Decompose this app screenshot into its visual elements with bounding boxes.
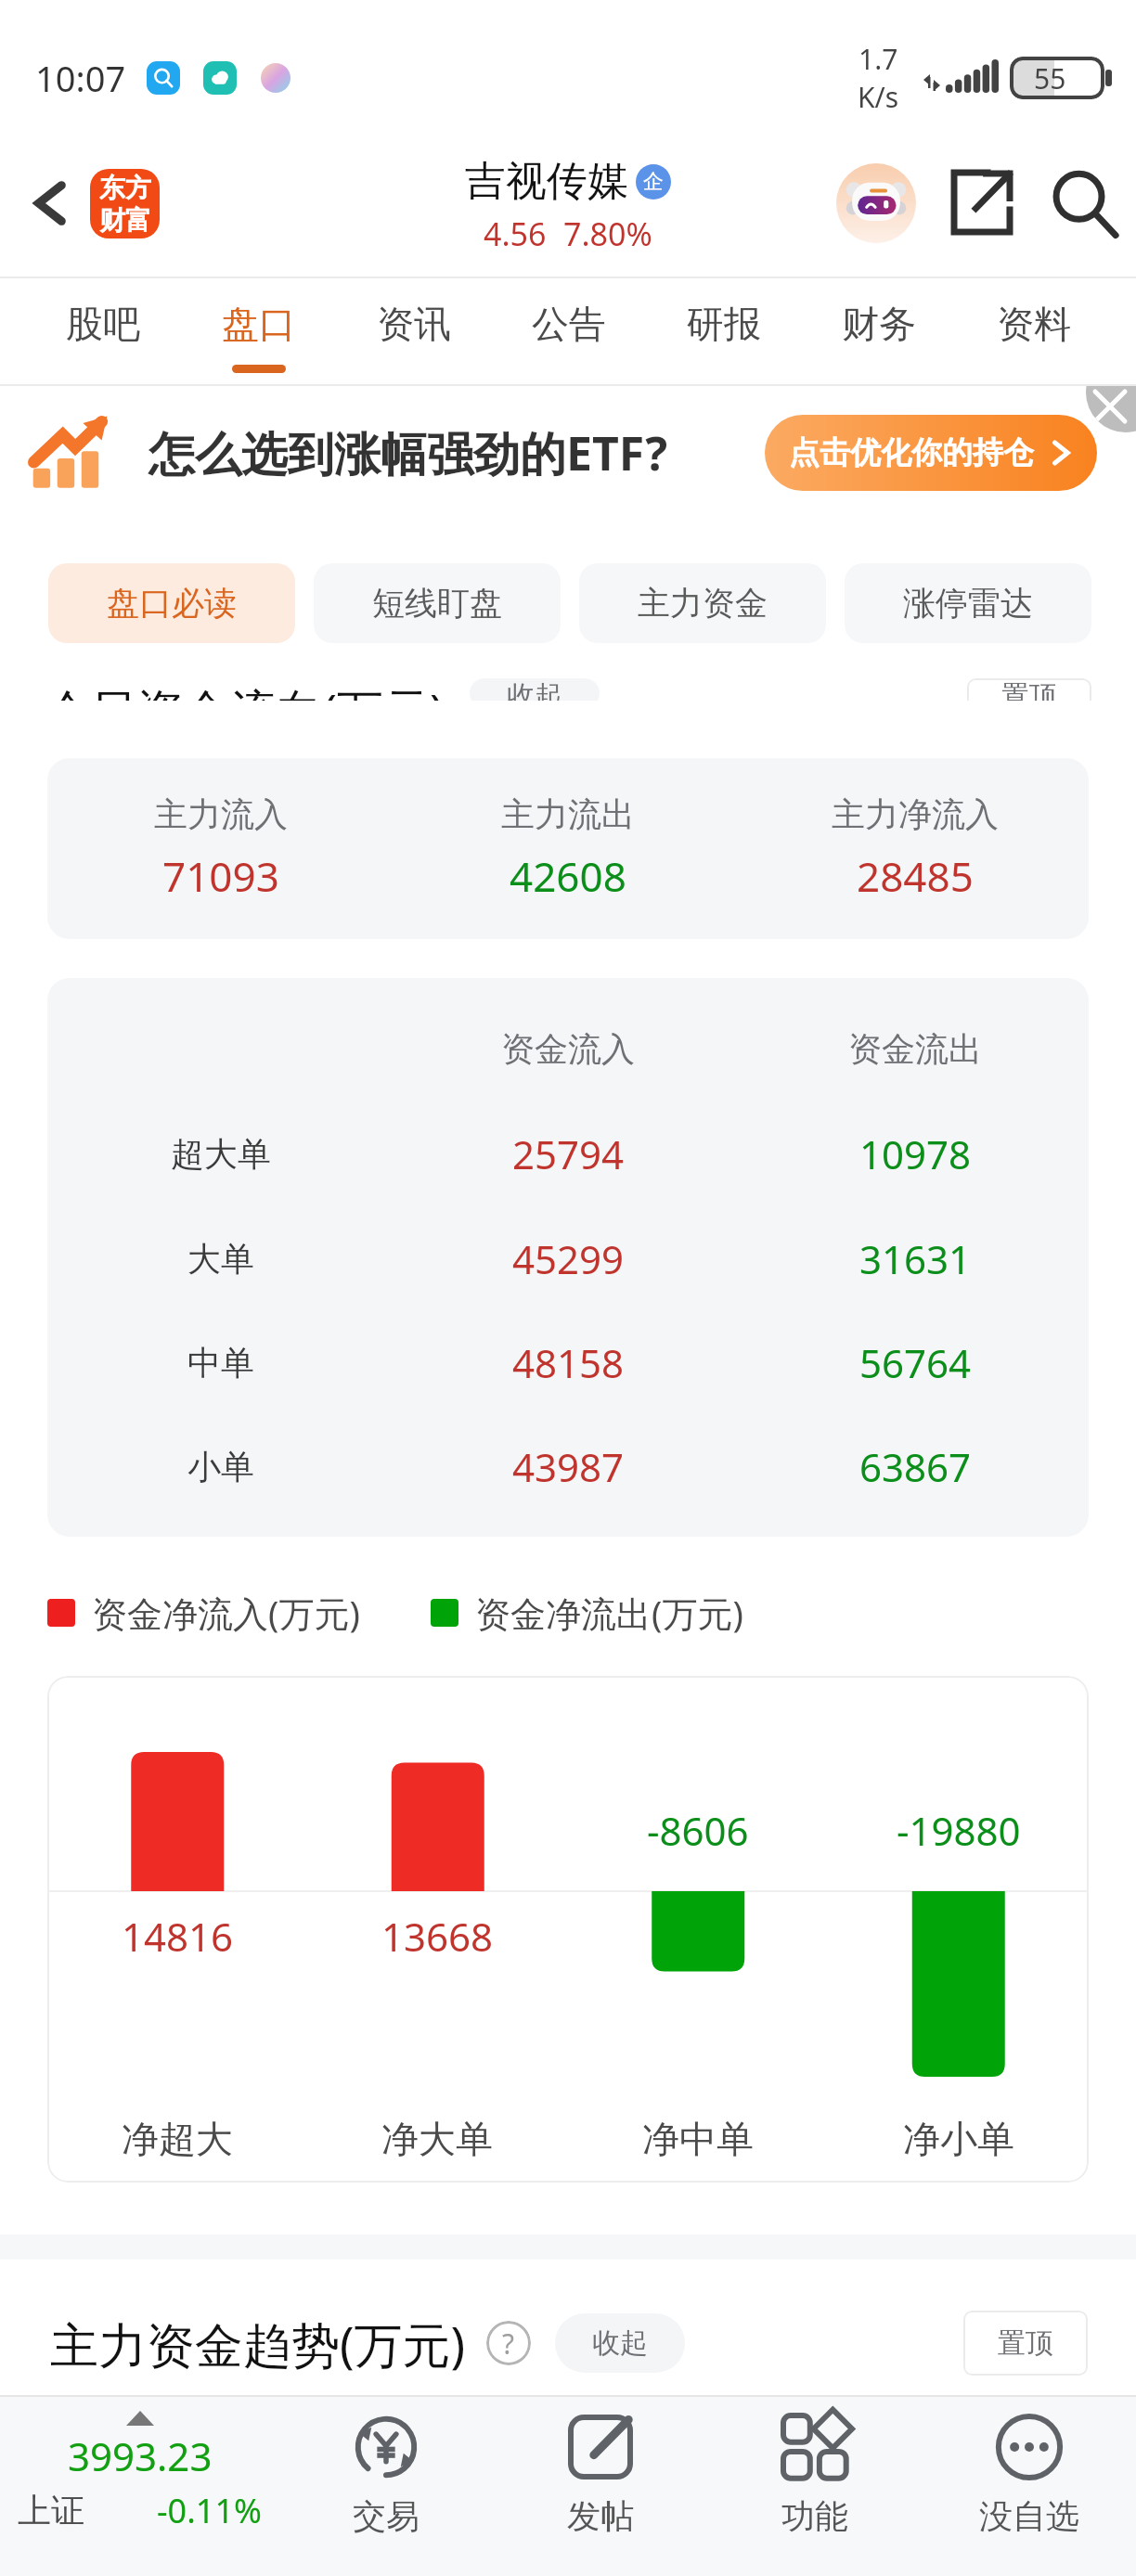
staticText: 1.7 (858, 40, 898, 78)
staticText: 大单 (187, 1238, 254, 1280)
button[interactable]: 发帖 (493, 2397, 707, 2576)
staticText: 没自选 (979, 2495, 1079, 2537)
staticText: 研报 (687, 301, 761, 347)
staticText: 上证 (18, 2490, 84, 2531)
staticText: 净大单 (381, 2116, 493, 2162)
staticText: 56764 (859, 1336, 972, 1389)
button[interactable]: 短线盯盘 (314, 563, 561, 643)
staticText: 净中单 (642, 2116, 754, 2162)
staticText: 收起 (507, 678, 562, 701)
button[interactable]: 收起 (555, 2313, 685, 2373)
staticText: 吉视传媒 (465, 156, 628, 207)
button[interactable]: 置顶 (963, 2311, 1088, 2376)
staticText: 14816 (122, 1910, 234, 1963)
staticText: 主力资金 (638, 583, 768, 624)
staticText: 公告 (532, 301, 606, 347)
staticText: -8606 (647, 1804, 749, 1857)
staticText: 42608 (510, 848, 626, 904)
staticText: 净超大 (122, 2116, 233, 2162)
button[interactable]: AI assistant (833, 161, 919, 246)
staticText: 企 (643, 169, 664, 195)
staticText: 发帖 (567, 2495, 634, 2537)
staticText: 超大单 (171, 1133, 271, 1175)
staticText: 55 (1034, 59, 1066, 97)
staticText: K/s (858, 78, 899, 116)
staticText: 资料 (997, 301, 1071, 347)
staticText: 置顶 (1001, 678, 1057, 701)
staticText: 东方 (99, 172, 151, 204)
staticText: 资金净流出(万元) (475, 1589, 743, 1637)
button[interactable]: 财务 (801, 278, 956, 384)
button[interactable]: Back (15, 168, 85, 238)
staticText: 财富 (99, 204, 151, 237)
staticText: 63867 (859, 1440, 972, 1493)
staticText: 资金净流入(万元) (92, 1589, 360, 1637)
staticText: -19880 (897, 1804, 1021, 1857)
staticText: 怎么选到涨幅强劲的ETF? (148, 421, 668, 484)
staticText: 资金流出 (848, 1028, 982, 1070)
staticText: 置顶 (998, 2325, 1053, 2361)
staticText: 4.56 (484, 213, 547, 255)
staticText: 25794 (512, 1127, 625, 1180)
button[interactable]: Search (1045, 163, 1125, 243)
staticText: 48158 (512, 1336, 625, 1389)
button[interactable]: 盘口 (181, 278, 336, 384)
button[interactable]: Help (486, 2321, 531, 2365)
staticText: 10:07 (35, 54, 126, 102)
button[interactable]: Share (941, 163, 1021, 243)
staticText: 13668 (381, 1910, 494, 1963)
staticText: 10978 (859, 1127, 972, 1180)
button[interactable]: Close banner (1086, 386, 1136, 432)
staticText: 43987 (512, 1440, 625, 1493)
staticText: 涨停雷达 (903, 583, 1033, 624)
staticText: 31631 (859, 1232, 972, 1285)
button[interactable]: 置顶 (967, 678, 1091, 701)
staticText: 主力资金趋势(万元) (50, 2311, 466, 2376)
staticText: 主力流入 (154, 793, 288, 835)
staticText: 交易 (353, 2495, 420, 2537)
staticText: 45299 (512, 1232, 625, 1285)
button[interactable]: 功能 (707, 2397, 922, 2576)
staticText: 3993.23 (68, 2429, 213, 2482)
staticText: 盘口必读 (107, 583, 237, 624)
staticText: 财务 (842, 301, 916, 347)
staticText: 主力净流入 (832, 793, 999, 835)
staticText: 短线盯盘 (372, 583, 502, 624)
staticText: 71093 (162, 848, 279, 904)
button[interactable]: 怎么选到涨幅强劲的ETF? (32, 386, 1097, 520)
button[interactable]: 涨停雷达 (845, 563, 1091, 643)
staticText: 主力流出 (501, 793, 635, 835)
staticText: 今日资金流向(万元) (45, 678, 444, 701)
button[interactable]: 交易 (279, 2397, 493, 2576)
button[interactable]: 主力资金 (579, 563, 826, 643)
button[interactable]: East Money home (90, 169, 160, 238)
button[interactable]: 没自选 (922, 2397, 1136, 2576)
staticText: 点击优化你的持仓 (789, 433, 1034, 472)
staticText: 功能 (781, 2495, 848, 2537)
staticText: 小单 (187, 1446, 254, 1488)
staticText: 7.80% (563, 213, 652, 255)
button[interactable]: 公告 (491, 278, 646, 384)
staticText: 股吧 (66, 301, 140, 347)
staticText: 28485 (857, 848, 974, 904)
staticText: 资金流入 (501, 1028, 635, 1070)
staticText: 收起 (592, 2325, 648, 2361)
button[interactable]: 3993.23 (0, 2397, 279, 2576)
button[interactable]: 盘口必读 (48, 563, 295, 643)
staticText: ? (502, 2325, 515, 2363)
button[interactable]: 资料 (956, 278, 1111, 384)
button[interactable]: 研报 (646, 278, 801, 384)
staticText: 资讯 (377, 301, 451, 347)
staticText: 盘口 (222, 301, 296, 347)
button[interactable]: 点击优化你的持仓 (765, 415, 1097, 491)
button[interactable]: 股吧 (25, 278, 181, 384)
button[interactable]: 收起 (470, 678, 600, 701)
staticText: 净小单 (903, 2116, 1014, 2162)
staticText: 中单 (187, 1342, 254, 1384)
button[interactable]: 资讯 (336, 278, 491, 384)
staticText: -0.11% (157, 2488, 262, 2533)
